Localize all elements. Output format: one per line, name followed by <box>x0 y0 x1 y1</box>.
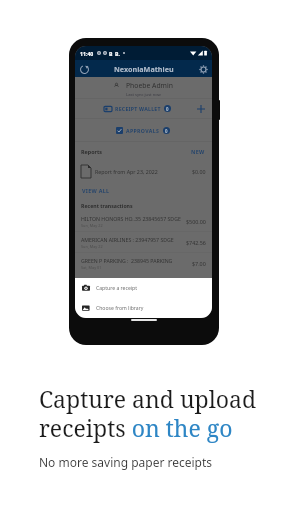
staticText: Choose from library <box>96 305 144 312</box>
button[interactable]: NEW <box>190 145 206 158</box>
staticText: $0.00 <box>192 168 206 175</box>
staticText: Last sync just now <box>126 92 161 98</box>
staticText: NexoniaMathieu <box>114 64 174 74</box>
staticText: B <box>109 50 113 57</box>
button[interactable]: HILTON HONORS HO..35 23845657 SDGE <box>75 211 212 231</box>
button[interactable]: Capture a receipt <box>75 278 212 298</box>
button[interactable]: Refresh <box>77 62 91 76</box>
staticText: 0 <box>165 128 168 134</box>
staticText: APPROVALS <box>126 127 160 134</box>
button[interactable]: VIEW ALL <box>81 184 111 197</box>
staticText: Sun, May 22 <box>81 223 103 228</box>
staticText: $500.00 <box>186 218 206 225</box>
button[interactable]: GREEN P PARKING : 238945 PARKING <box>75 253 212 273</box>
button[interactable]: Choose from library <box>75 298 212 318</box>
staticText: Recent transactions <box>81 202 133 209</box>
staticText: RECEIPT WALLET <box>115 105 161 112</box>
staticText: Capture a receipt <box>96 285 138 292</box>
staticText: $742.56 <box>186 239 206 246</box>
staticText: Phoebe Admin <box>126 81 173 90</box>
button[interactable]: RECEIPT WALLET <box>75 99 212 118</box>
staticText: Sun, May 22 <box>81 244 103 249</box>
staticText: NEW <box>191 148 205 155</box>
staticText: HILTON HONORS HO..35 23845657 SDGE <box>81 215 181 222</box>
staticText: 0 <box>166 106 169 112</box>
button[interactable]: Add receipt <box>195 103 206 114</box>
staticText: Report from Apr 23, 2022 <box>95 168 158 175</box>
staticText: VIEW ALL <box>82 187 110 194</box>
staticText: AMERICAN AIRLINES : 23947957 SDGE <box>81 236 174 243</box>
button[interactable]: Settings <box>196 62 210 76</box>
button[interactable]: Report from Apr 23, 2022 <box>75 161 212 181</box>
staticText: No more saving paper receipts <box>39 454 213 470</box>
staticText: B. <box>115 50 120 57</box>
staticText: GREEN P PARKING : 238945 PARKING <box>81 257 173 264</box>
button[interactable]: APPROVALS <box>75 119 212 141</box>
staticText: Capture and upload receipts on the go <box>39 383 257 444</box>
button[interactable]: AMERICAN AIRLINES : 23947957 SDGE <box>75 232 212 252</box>
staticText: 11:40 <box>80 50 94 57</box>
staticText: $7.00 <box>192 260 206 267</box>
staticText: Reports <box>81 148 102 155</box>
staticText: Sat, May 01 <box>81 265 102 270</box>
